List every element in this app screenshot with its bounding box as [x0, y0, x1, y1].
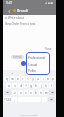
- staticText: s: [14, 84, 16, 88]
- staticText: b: [35, 91, 37, 95]
- staticText: g: [30, 84, 32, 88]
- staticText: a: [8, 84, 10, 88]
- button[interactable]: z: [12, 90, 17, 95]
- button[interactable]: v: [29, 90, 33, 95]
- staticText: r: [22, 77, 24, 81]
- button[interactable]: ,: [12, 97, 17, 102]
- button[interactable]: o: [46, 76, 50, 81]
- staticText: Tone: [45, 47, 52, 51]
- staticText: Formal: [13, 55, 22, 59]
- button[interactable]: Tone selector: [21, 61, 26, 66]
- button[interactable]: r: [21, 76, 25, 81]
- staticText: y: [32, 77, 34, 81]
- button[interactable]: Emoji: [48, 97, 55, 102]
- staticText: p: [52, 77, 54, 81]
- button[interactable]: g: [29, 83, 33, 88]
- staticText: 9:41: [6, 1, 13, 5]
- button[interactable]: .: [42, 97, 47, 102]
- button[interactable]: a: [6, 83, 11, 88]
- staticText: d: [20, 84, 22, 88]
- staticText: z: [14, 91, 16, 95]
- button[interactable]: [21, 70, 39, 76]
- button[interactable]: j: [39, 83, 43, 88]
- staticText: f: [25, 84, 27, 88]
- button[interactable]: w: [10, 76, 15, 81]
- staticText: h: [35, 84, 37, 88]
- staticText: q: [6, 77, 8, 81]
- button[interactable]: s: [12, 83, 17, 88]
- staticText: k: [45, 84, 47, 88]
- button[interactable]: t: [26, 76, 30, 81]
- button[interactable]: x: [18, 90, 23, 95]
- staticText: v: [30, 91, 32, 95]
- staticText: c: [25, 91, 27, 95]
- staticText: w: [11, 77, 14, 81]
- button[interactable]: y: [31, 76, 35, 81]
- button[interactable]: u: [36, 76, 40, 81]
- staticText: New Order From a sma: [5, 22, 36, 26]
- staticText: Casual: [28, 63, 38, 67]
- staticText: t: [27, 77, 29, 81]
- staticText: m: [45, 91, 48, 95]
- staticText: .: [44, 98, 45, 102]
- button[interactable]: d: [18, 83, 23, 88]
- staticText: o: [47, 77, 49, 81]
- button[interactable]: f: [24, 83, 28, 88]
- button[interactable]: Back: [6, 8, 12, 14]
- button[interactable]: e: [16, 76, 20, 81]
- button[interactable]: Casual: [26, 61, 50, 68]
- button[interactable]: m: [44, 90, 48, 95]
- button[interactable]: [3, 70, 21, 76]
- staticText: Professional: [28, 56, 46, 60]
- staticText: Write about: [8, 16, 25, 20]
- button[interactable]: q: [4, 76, 9, 81]
- button[interactable]: n: [39, 90, 43, 95]
- staticText: e: [17, 77, 19, 81]
- button[interactable]: p: [51, 76, 55, 81]
- staticText: ?123: [4, 98, 11, 102]
- button[interactable]: Backspace: [49, 90, 55, 95]
- staticText: j: [41, 84, 42, 88]
- button[interactable]: i: [41, 76, 45, 81]
- button[interactable]: k: [44, 83, 48, 88]
- button[interactable]: Shift: [4, 90, 11, 95]
- button[interactable]: l: [49, 83, 53, 88]
- staticText: Brandi: [17, 8, 29, 13]
- button[interactable]: Formal: [11, 55, 24, 59]
- staticText: n: [40, 91, 42, 95]
- staticText: x: [20, 91, 22, 95]
- button[interactable]: Professional: [26, 54, 50, 61]
- button[interactable]: [39, 70, 56, 76]
- button[interactable]: Polite: [26, 68, 50, 73]
- staticText: Polite: [28, 69, 36, 73]
- staticText: i: [43, 77, 44, 81]
- button[interactable]: c: [24, 90, 28, 95]
- staticText: u: [37, 77, 39, 81]
- staticText: l: [51, 84, 52, 88]
- button[interactable]: h: [34, 83, 38, 88]
- button[interactable]: b: [34, 90, 38, 95]
- staticText: ,: [14, 98, 15, 102]
- button[interactable]: ?123: [4, 97, 11, 102]
